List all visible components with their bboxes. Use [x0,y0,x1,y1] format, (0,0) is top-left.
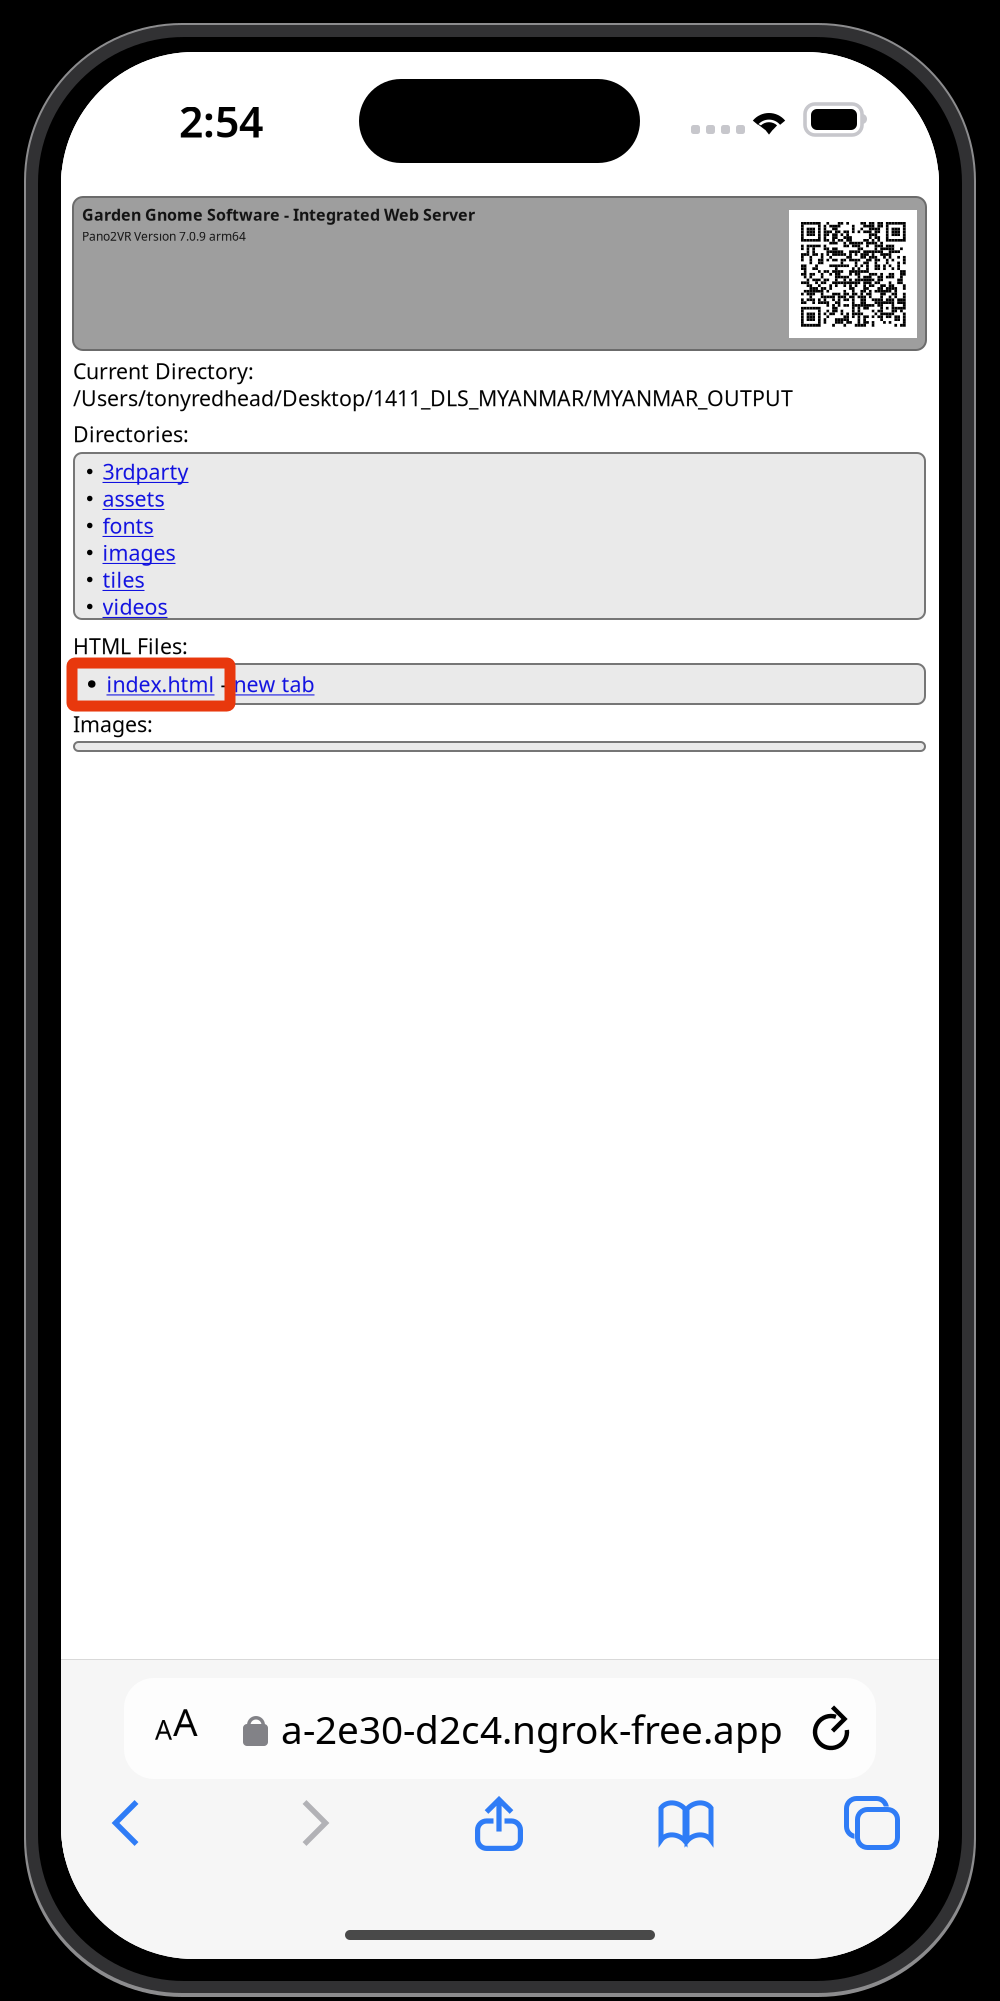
staticText: new tab [233,670,314,698]
button[interactable]: tiles [74,566,923,593]
button[interactable]: Forward [253,1786,377,1860]
staticText: Images: [73,710,153,738]
staticText: Directories: [73,420,189,448]
button[interactable]: Back [64,1786,188,1860]
staticText: 3rdparty [102,457,188,486]
button[interactable]: images [74,539,923,566]
staticText: images [102,538,175,567]
button[interactable]: assets [74,485,923,512]
button[interactable]: fonts [74,512,923,539]
button[interactable]: Bookmarks [624,1786,748,1860]
staticText: HTML Files: [73,632,188,660]
staticText: a-2e30-d2c4.ngrok-free.app [281,1703,783,1755]
staticText: tiles [102,565,144,594]
staticText: Garden Gnome Software - Integrated Web S… [82,204,475,225]
staticText: - [214,670,233,698]
button[interactable]: Tabs [810,1786,934,1860]
button[interactable]: new tab [233,670,314,698]
staticText: Pano2VR Version 7.0.9 arm64 [82,228,246,244]
staticText: /Users/tonyredhead/Desktop/1411_DLS_MYAN… [73,384,793,412]
button[interactable]: Share [437,1786,561,1860]
staticText: videos [102,592,167,621]
button[interactable]: A [124,1678,876,1779]
staticText: A [173,1696,198,1747]
button[interactable]: 3rdparty [74,458,923,485]
staticText: A [155,1712,172,1747]
staticText: Current Directory: [73,357,254,385]
button[interactable]: index.html [95,670,214,698]
staticText: fonts [102,511,153,540]
staticText: index.html [106,670,214,698]
button[interactable]: videos [74,593,923,620]
staticText: 2:54 [179,93,263,149]
staticText: assets [102,484,164,513]
